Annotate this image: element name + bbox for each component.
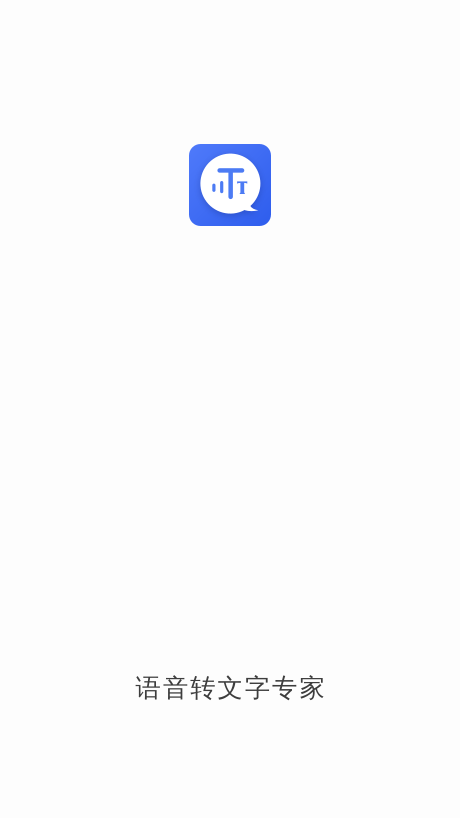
staticText: 语音转文字专家 [136, 672, 324, 703]
